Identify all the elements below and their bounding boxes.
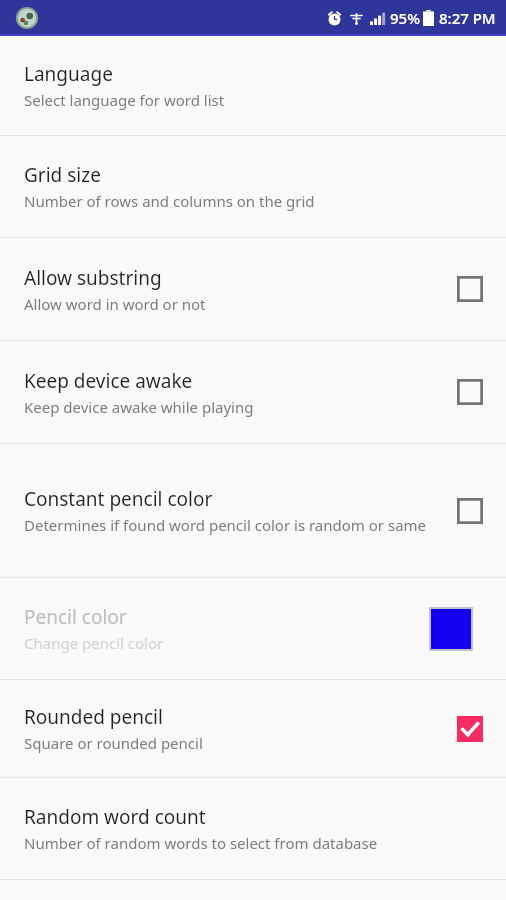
button[interactable]: Language [0,36,506,135]
button[interactable]: Constant pencil color [0,444,506,577]
button[interactable]: Constant pencil color [446,487,494,535]
staticText: Allow substring [24,265,162,291]
staticText: Keep device awake while playing [24,397,254,417]
button[interactable]: Keep device awake [0,341,506,443]
button[interactable]: Rounded pencil [446,705,494,753]
staticText: Determines if found word pencil color is… [24,515,427,535]
staticText: Constant pencil color [24,486,213,512]
staticText: 8:27 PM [439,8,496,28]
staticText: Allow word in word or not [24,294,206,314]
staticText: Random word count [24,804,206,830]
button[interactable]: Grid size [0,136,506,237]
button[interactable]: Allow substring [0,238,506,340]
button[interactable]: Rounded pencil [0,680,506,777]
staticText: Number of random words to select from da… [24,833,378,853]
button[interactable]: Allow substring [446,265,494,313]
staticText: Square or rounded pencil [24,733,203,753]
staticText: 95% [390,8,420,28]
button[interactable]: Pencil color [0,578,506,679]
button[interactable]: Keep device awake [446,368,494,416]
staticText: Language [24,61,113,87]
staticText: Change pencil color [24,633,164,653]
staticText: Rounded pencil [24,704,163,730]
staticText: Select language for word list [24,90,225,110]
button[interactable]: Random word count [0,778,506,879]
staticText: Grid size [24,162,101,188]
staticText: Number of rows and columns on the grid [24,191,315,211]
staticText: Keep device awake [24,368,193,394]
staticText: Pencil color [24,604,127,630]
